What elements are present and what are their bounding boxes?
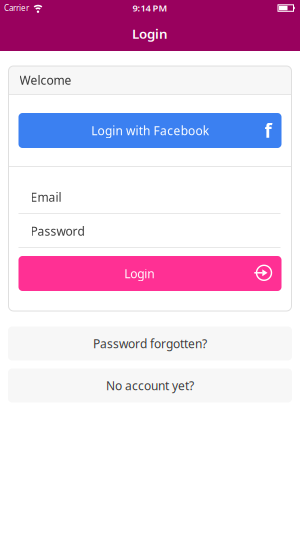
staticText: Password forgotten? xyxy=(93,335,207,351)
button[interactable]: No account yet? xyxy=(8,368,292,402)
staticText: Login xyxy=(132,25,168,42)
staticText: Carrier xyxy=(4,3,29,13)
staticText: Password xyxy=(30,223,84,239)
button[interactable]: Password xyxy=(8,214,291,248)
button[interactable]: Email xyxy=(8,167,291,214)
staticText: Welcome xyxy=(19,72,71,88)
staticText: Login with Facebook xyxy=(91,122,209,138)
button[interactable]: Login xyxy=(18,256,281,291)
button[interactable]: Password forgotten? xyxy=(8,326,292,360)
staticText: Login xyxy=(124,265,154,281)
staticText: 9:14 PM xyxy=(132,2,167,14)
staticText: f xyxy=(264,118,271,143)
staticText: No account yet? xyxy=(106,377,194,393)
button[interactable]: Login with Facebook xyxy=(18,113,281,148)
staticText: Email xyxy=(30,189,61,205)
